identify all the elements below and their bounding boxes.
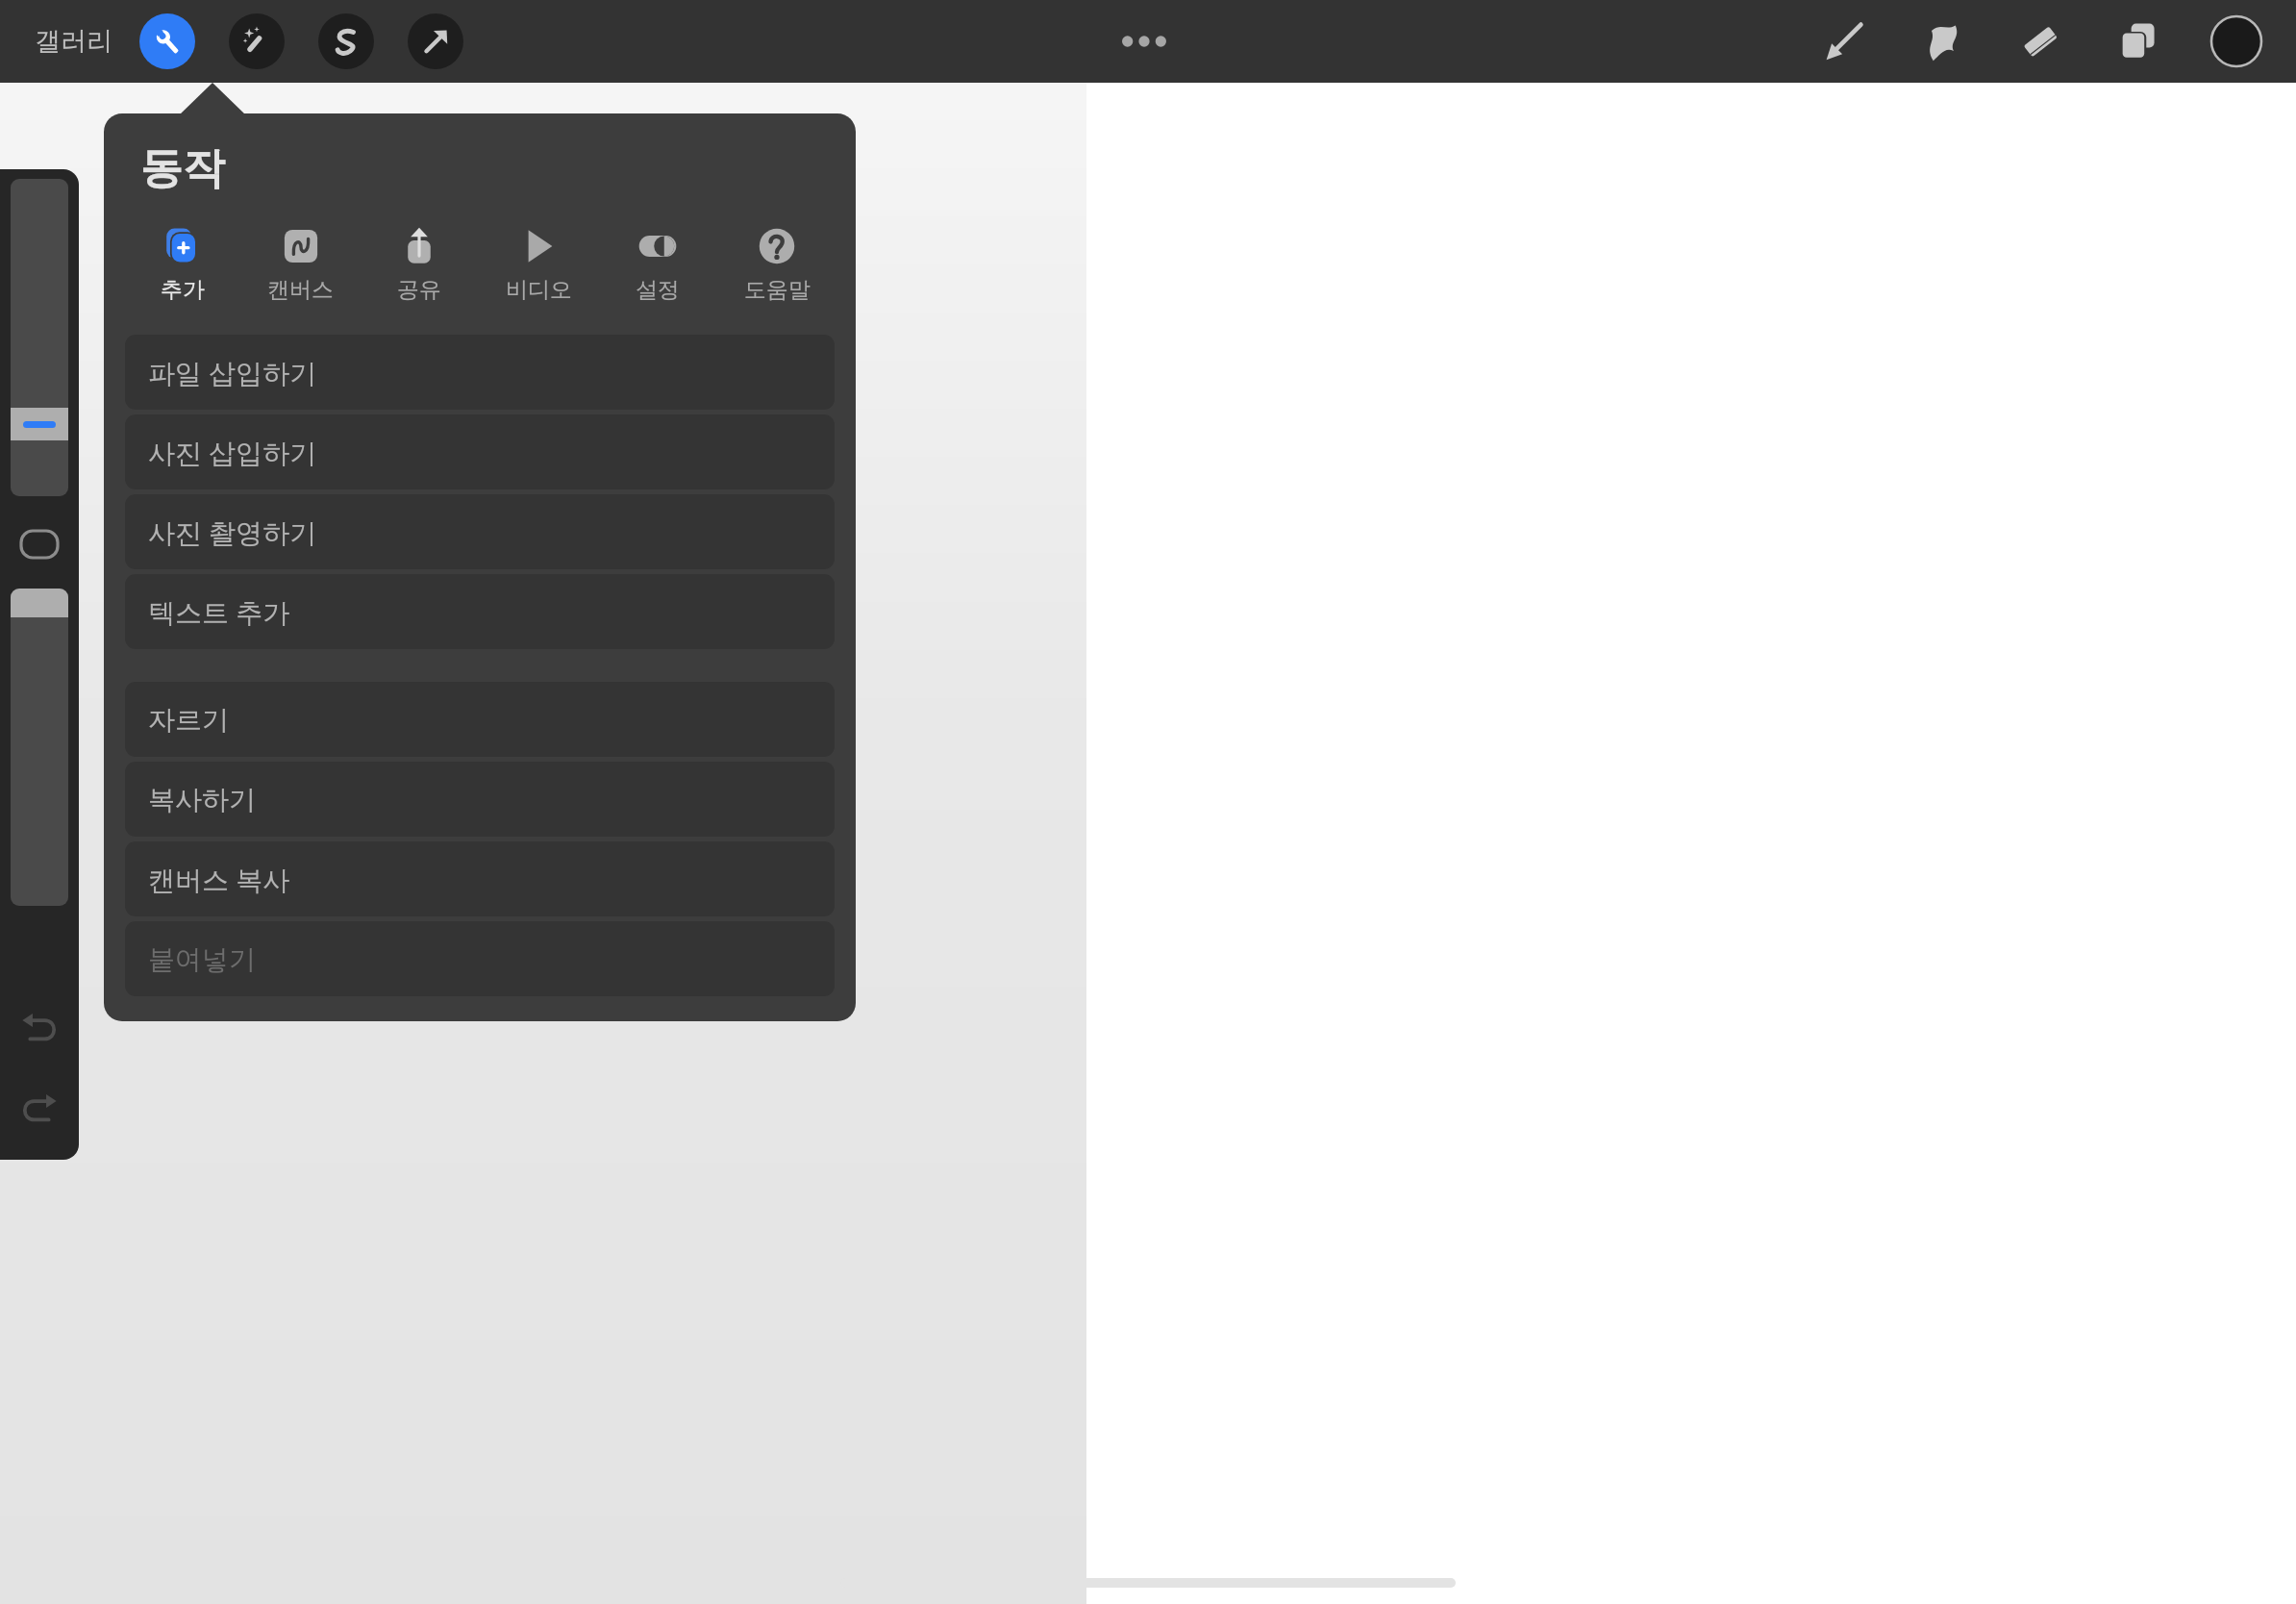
staticText: 복사하기: [148, 783, 256, 816]
button[interactable]: Redo: [15, 1085, 63, 1133]
button[interactable]: 추가: [123, 220, 241, 308]
button[interactable]: 자르기: [125, 682, 835, 757]
button[interactable]: More options: [1104, 20, 1185, 63]
button[interactable]: Transform: [408, 13, 463, 69]
button[interactable]: Layers: [2108, 11, 2169, 72]
staticText: 추가: [161, 276, 205, 304]
staticText: 사진 삽입하기: [148, 434, 317, 470]
staticText: 자르기: [148, 703, 229, 737]
button[interactable]: 설정: [598, 220, 717, 308]
staticText: 파일 삽입하기: [148, 354, 317, 390]
button[interactable]: Actions: [139, 13, 195, 69]
button[interactable]: Colour: [2202, 7, 2271, 76]
button[interactable]: 캔버스 복사: [125, 841, 835, 916]
button[interactable]: 캔버스: [241, 220, 360, 308]
button[interactable]: Opacity: [11, 589, 68, 906]
button[interactable]: 도움말: [717, 220, 836, 308]
button[interactable]: 파일 삽입하기: [125, 335, 835, 410]
button[interactable]: Undo: [15, 1004, 63, 1052]
staticText: 도움말: [744, 276, 811, 304]
staticText: 설정: [636, 276, 680, 304]
staticText: 갤러리: [35, 25, 112, 58]
staticText: 캔버스: [267, 276, 334, 304]
button[interactable]: 텍스트 추가: [125, 574, 835, 649]
staticText: 사진 촬영하기: [148, 514, 317, 550]
staticText: 동작: [140, 142, 225, 195]
staticText: 텍스트 추가: [148, 593, 290, 630]
button[interactable]: 공유: [360, 220, 479, 308]
staticText: 비디오: [506, 276, 572, 304]
button[interactable]: 복사하기: [125, 762, 835, 837]
button[interactable]: Brush size: [11, 179, 68, 496]
button[interactable]: Selection: [318, 13, 374, 69]
staticText: 공유: [397, 276, 441, 304]
button[interactable]: Erase: [2009, 11, 2071, 72]
button[interactable]: 붙여넣기: [125, 921, 835, 996]
button[interactable]: Smudge: [1911, 11, 1973, 72]
staticText: 캔버스 복사: [148, 861, 290, 897]
button[interactable]: Adjustments: [229, 13, 285, 69]
staticText: 붙여넣기: [148, 942, 256, 976]
button[interactable]: 사진 촬영하기: [125, 494, 835, 569]
button[interactable]: Paint: [1813, 11, 1875, 72]
button[interactable]: 비디오: [479, 220, 598, 308]
button[interactable]: 갤러리: [23, 13, 124, 69]
button[interactable]: 사진 삽입하기: [125, 414, 835, 489]
button[interactable]: Modify: [21, 531, 58, 558]
